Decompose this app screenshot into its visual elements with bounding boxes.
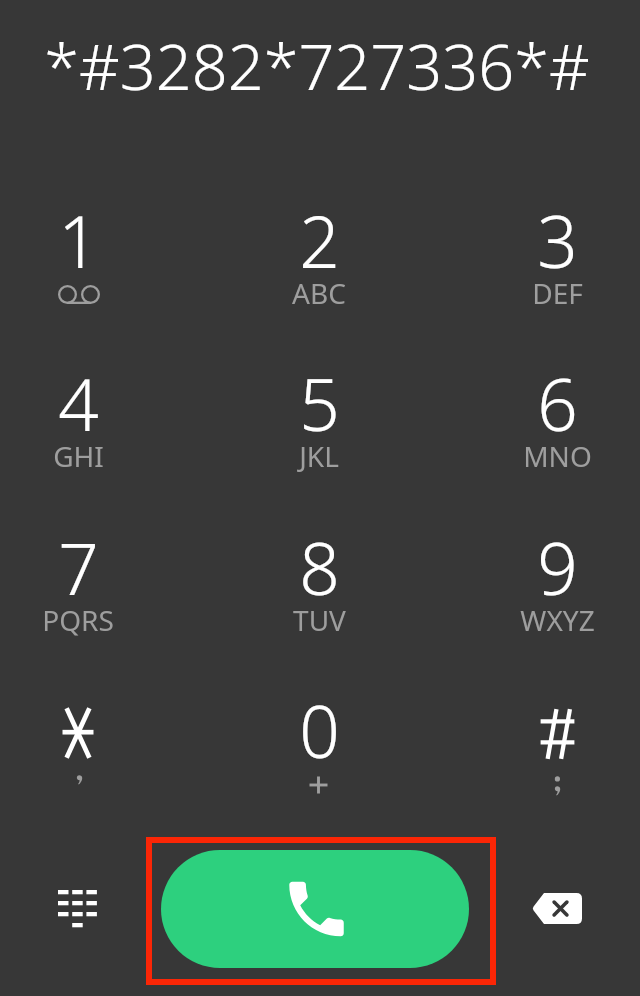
staticText: 5 xyxy=(299,355,340,452)
button[interactable]: 6 xyxy=(438,344,640,506)
button[interactable]: 4 xyxy=(0,344,198,506)
staticText: 6 xyxy=(537,355,578,452)
button[interactable]: 0 xyxy=(198,671,438,833)
button[interactable]: Show keypad xyxy=(22,853,132,963)
staticText: TUV xyxy=(293,601,346,639)
button[interactable] xyxy=(438,671,640,833)
staticText: 2 xyxy=(299,192,340,289)
staticText: 0 xyxy=(299,682,340,779)
staticText: 1 xyxy=(58,192,99,289)
button[interactable] xyxy=(0,671,198,833)
staticText: *#3282*727336*# xyxy=(44,23,590,109)
staticText: 4 xyxy=(58,355,99,452)
button[interactable]: 5 xyxy=(198,344,438,506)
button[interactable]: Call xyxy=(161,850,469,968)
button[interactable]: 7 xyxy=(0,508,198,670)
button[interactable]: 2 xyxy=(198,181,438,343)
staticText: MNO xyxy=(523,437,592,475)
button[interactable]: 1 xyxy=(0,181,198,343)
staticText: GHI xyxy=(53,437,104,475)
button[interactable]: Backspace xyxy=(502,853,612,963)
staticText: 8 xyxy=(299,519,340,616)
staticText: DEF xyxy=(532,274,583,312)
staticText: 7 xyxy=(58,519,99,616)
button[interactable]: 9 xyxy=(438,508,640,670)
staticText: ABC xyxy=(292,274,346,312)
staticText: 9 xyxy=(537,519,578,616)
button[interactable]: 8 xyxy=(198,508,438,670)
button[interactable]: 3 xyxy=(438,181,640,343)
staticText: WXYZ xyxy=(520,601,595,639)
staticText: 3 xyxy=(537,192,578,289)
staticText: PQRS xyxy=(42,601,114,639)
staticText: JKL xyxy=(299,437,339,475)
